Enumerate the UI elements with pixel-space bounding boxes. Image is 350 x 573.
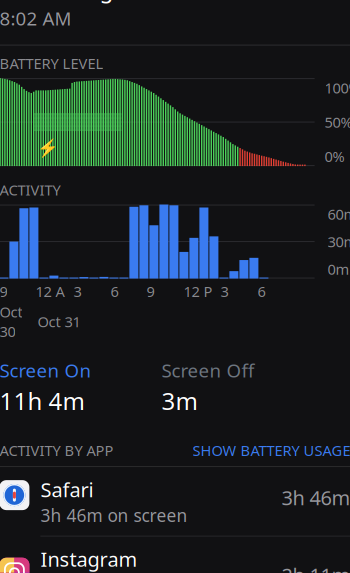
button[interactable]: SHOW BATTERY USAGE [193,441,350,460]
staticText: 6 [257,282,265,301]
staticText: ACTIVITY BY APP [0,441,113,460]
staticText: Safari [40,476,93,503]
staticText: 3h 46m [282,484,350,511]
staticText: ACTIVITY [0,180,60,200]
staticText: 9 [0,282,7,301]
staticText: 12 A [35,282,64,301]
staticText: 0m [328,259,350,279]
staticText: 30m [328,232,350,251]
staticText: 6 [110,282,118,301]
staticText: 11h 4m [0,385,84,417]
staticText: Oct 31 [37,312,80,331]
staticText: SHOW BATTERY USAGE [193,441,350,460]
staticText: 0% [325,147,345,166]
staticText: Instagram [40,546,137,572]
staticText: 12 P [183,282,212,301]
staticText: 50% [325,112,350,132]
staticText: 8:02 AM [0,6,71,31]
staticText: 9 [146,282,154,301]
staticText: ⚡ [37,138,59,158]
staticText: Screen Off [161,358,254,383]
staticText: 100% [325,78,350,98]
button[interactable]: Safari [0,467,350,536]
staticText: 3h 46m on screen [40,504,187,527]
staticText: Oct 30 [0,302,22,341]
staticText: Screen On [0,358,91,383]
staticText: BATTERY LEVEL [0,54,103,73]
staticText: 3m [161,385,197,417]
staticText: 2h 11m [282,562,350,573]
staticText: 3 [220,282,228,301]
staticText: 60m [328,204,350,224]
staticText: Last Charged to 100% [0,0,232,4]
staticText: 3 [73,282,81,301]
button[interactable]: Instagram [0,537,350,573]
